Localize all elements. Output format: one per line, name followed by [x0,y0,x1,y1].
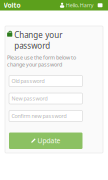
button[interactable]: Update [9,132,82,149]
staticText: Volto [3,1,20,10]
button[interactable]: Menu [95,0,108,10]
button[interactable]: Hello, Harry [60,0,95,10]
staticText: Hello, Harry [66,2,94,9]
staticText: New password [11,95,47,102]
staticText: Please use the form below to change your… [7,54,76,68]
button[interactable]: Volto [0,0,24,10]
staticText: Change your password [14,30,62,51]
staticText: Update [37,136,60,145]
staticText: Old password [11,77,44,85]
staticText: Confirm new password [11,112,66,120]
